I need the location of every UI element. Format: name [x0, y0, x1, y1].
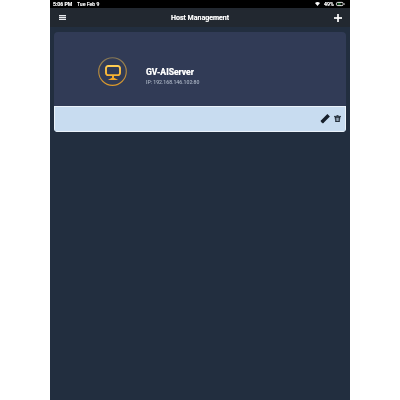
button[interactable]: Edit	[318, 112, 331, 125]
staticText: 5:06 PM	[53, 1, 73, 7]
staticText: GV-AIServer	[146, 67, 194, 77]
button[interactable]: Delete	[331, 112, 344, 125]
staticText: Tue Feb 9	[77, 1, 100, 7]
staticText: Host Management	[171, 14, 229, 22]
button[interactable]: GV-AIServer	[54, 32, 346, 106]
button[interactable]: Menu	[53, 8, 72, 27]
staticText: 49%	[324, 1, 334, 7]
button[interactable]: Add host	[328, 8, 347, 27]
staticText: IP: 192.168.146.102:80	[146, 79, 200, 85]
